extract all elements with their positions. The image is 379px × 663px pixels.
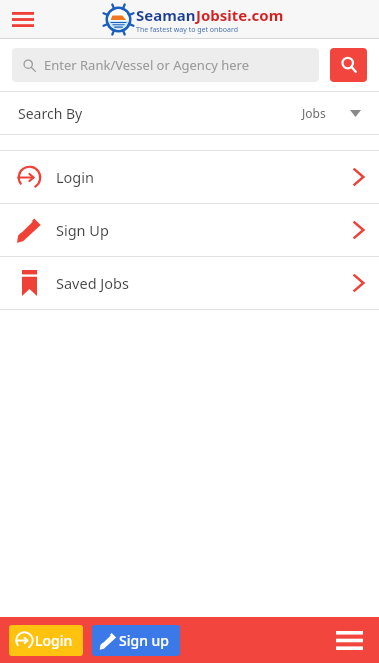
button[interactable]: Enter Rank/Vessel or Agency here — [12, 48, 319, 82]
button[interactable]: Login — [0, 151, 379, 203]
staticText: Login — [35, 631, 73, 650]
button[interactable]: Sign up — [92, 625, 180, 656]
staticText: The fastest way to get onboard — [136, 25, 238, 35]
button[interactable]: Search By — [0, 92, 379, 134]
button[interactable]: Open navigation menu — [6, 2, 40, 36]
button[interactable]: Open menu — [328, 619, 370, 661]
button[interactable]: Login — [9, 625, 83, 656]
staticText: Login — [56, 167, 94, 187]
staticText: Jobsite.com — [196, 5, 284, 25]
button[interactable]: Saved Jobs — [0, 257, 379, 309]
staticText: Jobs — [302, 105, 326, 121]
button[interactable]: Search — [330, 48, 367, 82]
staticText: Saved Jobs — [56, 273, 129, 293]
button[interactable]: Sign Up — [0, 204, 379, 256]
staticText: Seaman — [136, 5, 196, 25]
staticText: Enter Rank/Vessel or Agency here — [44, 56, 249, 74]
staticText: Search By — [18, 104, 83, 123]
staticText: Sign Up — [56, 220, 109, 240]
staticText: Sign up — [119, 631, 170, 650]
